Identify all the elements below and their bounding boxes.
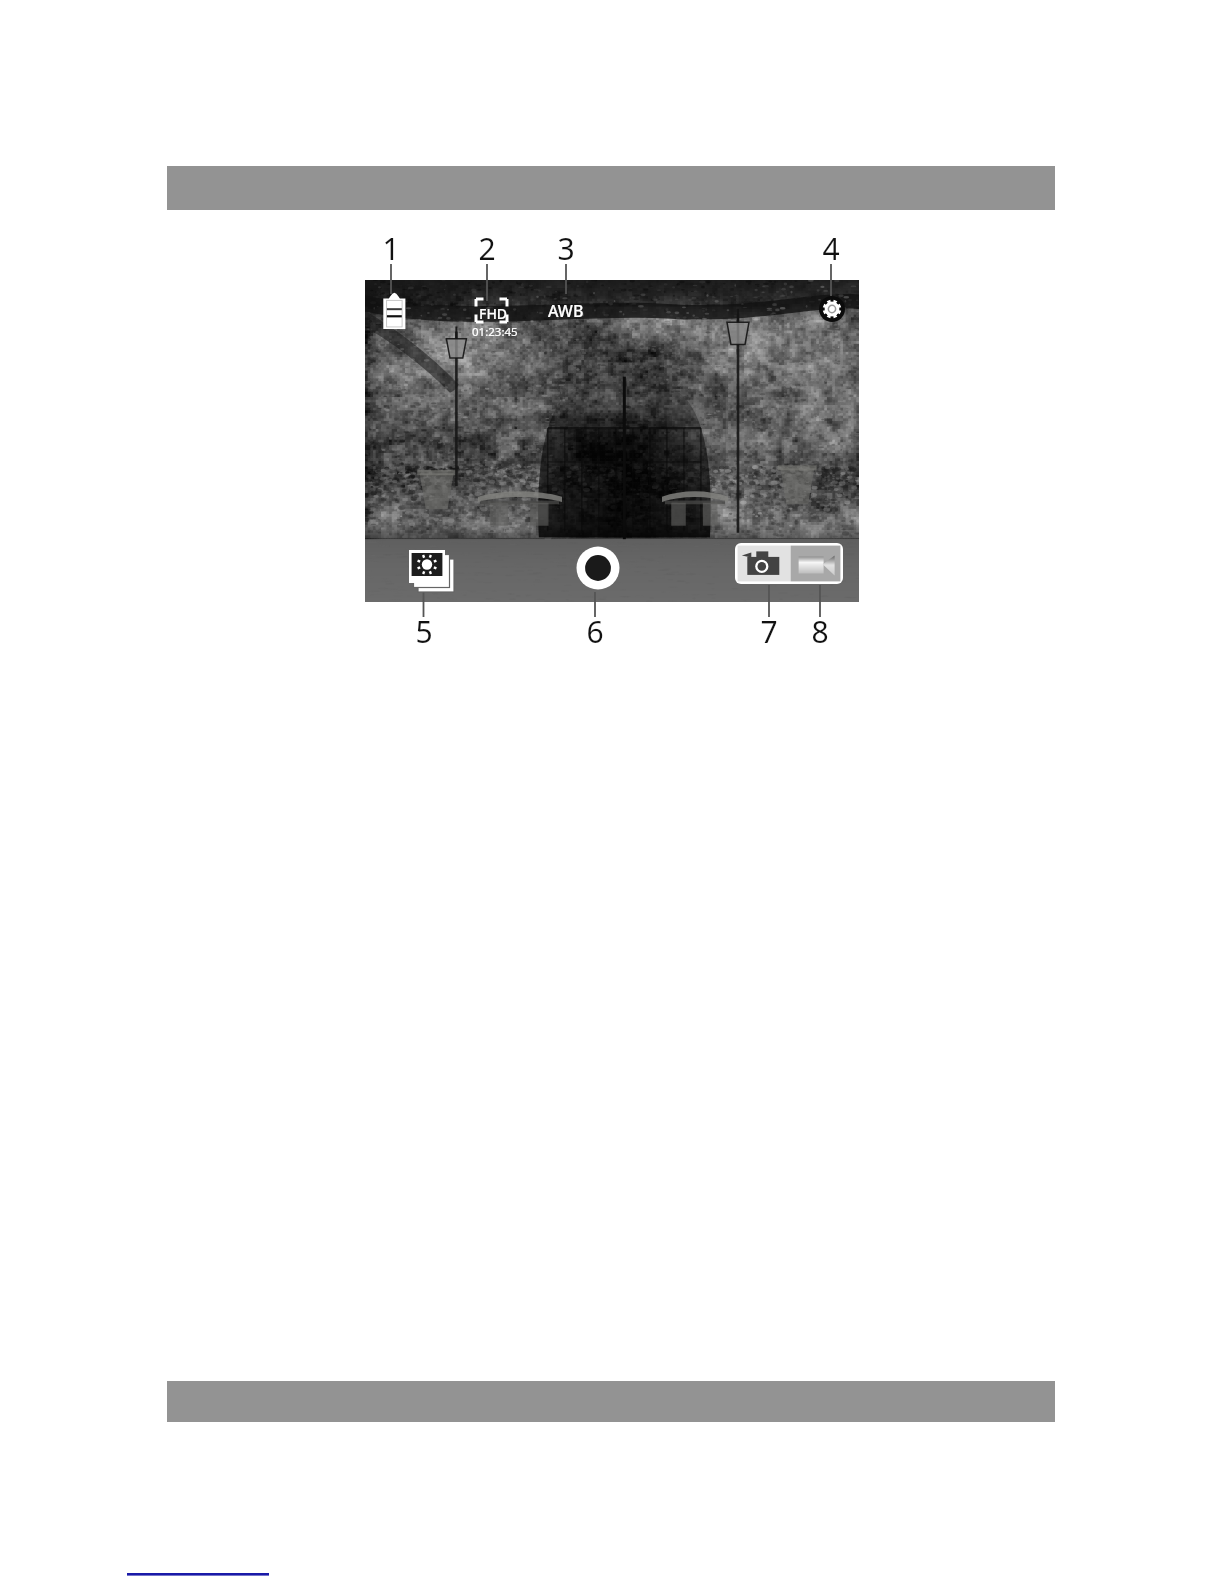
staticText: FHD (479, 304, 508, 323)
button[interactable]: Video mode (790, 543, 843, 584)
staticText: 8 (811, 611, 829, 649)
button[interactable]: Open gallery (409, 550, 455, 593)
button[interactable]: Settings (818, 295, 846, 323)
staticText: 1 (382, 228, 400, 266)
button[interactable]: Take photo (576, 546, 620, 590)
button[interactable]: Camera mode switch (735, 543, 843, 584)
staticText: 7 (760, 611, 778, 649)
staticText: 5 (415, 611, 433, 649)
button[interactable]: Photo mode (735, 543, 790, 584)
staticText: 2 (478, 228, 496, 266)
staticText: 6 (586, 611, 604, 649)
staticText: AWB (548, 300, 584, 322)
staticText: 4 (822, 228, 840, 266)
staticText: 01:23:45 (472, 324, 518, 340)
staticText: 3 (557, 228, 575, 266)
